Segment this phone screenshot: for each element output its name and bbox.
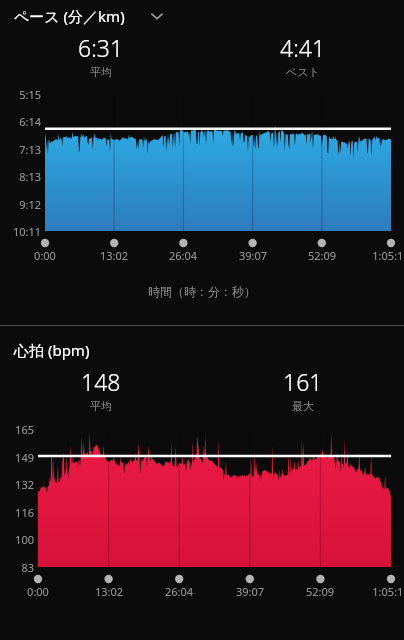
staticText: 0:00: [3, 584, 73, 599]
staticText: 平均: [90, 65, 112, 79]
staticText: 5:15: [0, 87, 41, 102]
staticText: 161: [283, 366, 323, 397]
staticText: 6:14: [0, 114, 41, 129]
staticText: 26:04: [144, 584, 214, 599]
staticText: 8:13: [0, 169, 41, 184]
staticText: 165: [0, 422, 34, 437]
button[interactable]: 心拍 (bpm): [0, 334, 404, 362]
staticText: 1:05:11: [356, 248, 404, 263]
staticText: 39:07: [215, 584, 285, 599]
staticText: 7:13: [0, 142, 41, 157]
staticText: 52:09: [285, 584, 355, 599]
staticText: ベスト: [286, 65, 320, 79]
staticText: 132: [0, 477, 34, 492]
staticText: 6:31: [78, 32, 124, 63]
button[interactable]: ペース (分／km): [0, 0, 404, 28]
staticText: ペース (分／km): [14, 6, 125, 26]
staticText: 13:02: [74, 584, 144, 599]
staticText: 13:02: [79, 248, 149, 263]
staticText: 1:05:11: [356, 584, 404, 599]
staticText: 83: [0, 560, 34, 575]
staticText: 148: [81, 366, 121, 397]
staticText: 39:07: [218, 248, 288, 263]
other: Change metric: [149, 8, 165, 24]
staticText: 0:00: [10, 248, 80, 263]
staticText: 9:12: [0, 197, 41, 212]
staticText: 10:11: [0, 224, 41, 239]
staticText: 心拍 (bpm): [14, 340, 90, 360]
staticText: 116: [0, 505, 34, 520]
staticText: 52:09: [287, 248, 357, 263]
staticText: 4:41: [280, 32, 326, 63]
staticText: 26:04: [148, 248, 218, 263]
staticText: 時間（時：分：秒）: [148, 284, 256, 299]
staticText: 100: [0, 532, 34, 547]
staticText: 平均: [90, 399, 112, 413]
staticText: 最大: [292, 399, 314, 413]
staticText: 149: [0, 450, 34, 465]
